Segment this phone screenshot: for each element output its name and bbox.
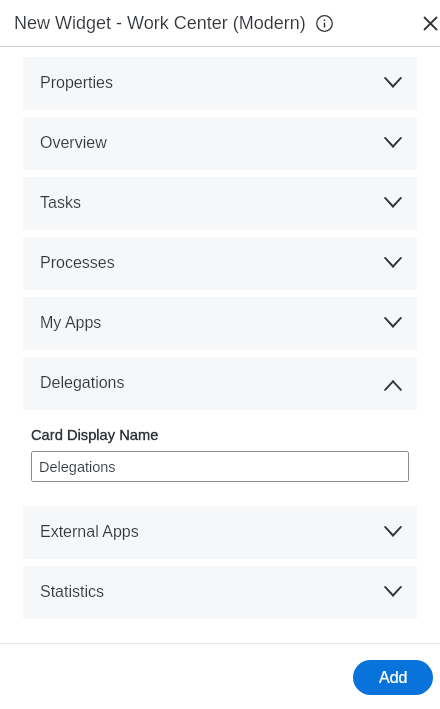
button[interactable]: Processes (23, 237, 417, 290)
button[interactable]: My Apps (23, 297, 417, 350)
staticText: Add (379, 669, 408, 687)
staticText: Statistics (40, 583, 105, 601)
button[interactable]: Properties (23, 57, 417, 110)
staticText: Properties (40, 74, 113, 92)
staticText: New Widget - Work Center (Modern) (14, 13, 306, 33)
staticText: Delegations (40, 374, 125, 392)
button[interactable]: Delegations (31, 451, 409, 482)
button[interactable]: Add (353, 660, 433, 695)
staticText: Processes (40, 254, 115, 272)
staticText: Delegations (39, 459, 116, 475)
staticText: Card Display Name (31, 427, 159, 443)
button[interactable]: Information (311, 10, 337, 36)
button[interactable]: Tasks (23, 177, 417, 230)
staticText: My Apps (40, 314, 102, 332)
staticText: External Apps (40, 523, 139, 541)
staticText: Tasks (40, 194, 81, 212)
button[interactable]: Overview (23, 117, 417, 170)
button[interactable]: Close (410, 8, 440, 38)
button[interactable]: Delegations (23, 357, 417, 410)
staticText: Overview (40, 134, 107, 152)
button[interactable]: Statistics (23, 566, 417, 619)
button[interactable]: External Apps (23, 506, 417, 559)
